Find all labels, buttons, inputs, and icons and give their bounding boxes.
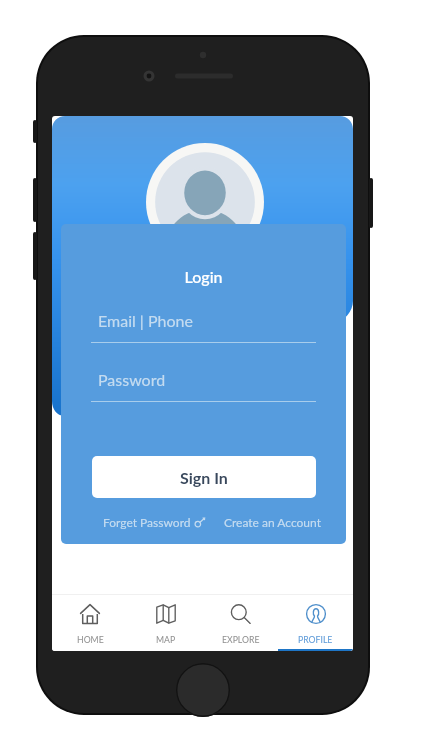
staticText: HOME <box>77 634 104 644</box>
button[interactable]: PROFILE <box>278 595 353 651</box>
button[interactable]: Forget Password <box>103 515 206 529</box>
staticText: EXPLORE <box>222 634 260 644</box>
staticText: MAP <box>156 634 176 644</box>
button[interactable]: HOME <box>52 595 128 651</box>
staticText: Forget Password <box>103 515 191 529</box>
button[interactable]: MAP <box>128 595 203 651</box>
button[interactable]: Sign In <box>92 456 316 498</box>
staticText: Email | Phone <box>98 311 193 330</box>
button[interactable]: Create an Account <box>224 515 321 529</box>
staticText: Password <box>98 370 166 389</box>
staticText: PROFILE <box>298 634 333 644</box>
staticText: Login <box>61 267 346 286</box>
staticText: Sign In <box>180 468 228 487</box>
button[interactable]: EXPLORE <box>203 595 278 651</box>
